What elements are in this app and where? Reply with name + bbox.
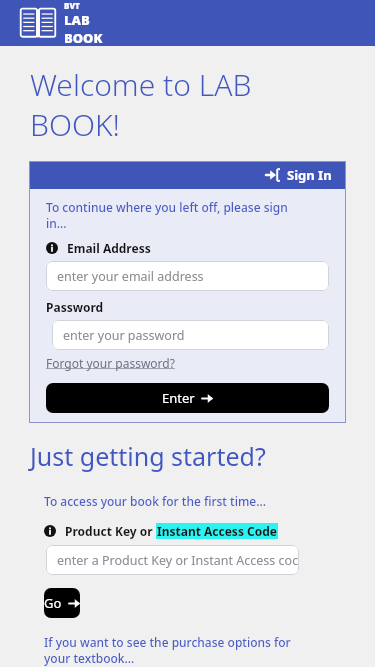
staticText: Go xyxy=(44,594,62,612)
staticText: Sign In xyxy=(287,166,332,184)
button[interactable]: enter your password xyxy=(52,320,329,350)
staticText: To continue where you left off, please s… xyxy=(46,199,288,232)
staticText: Password xyxy=(46,299,104,315)
staticText: Product Key or xyxy=(65,523,156,539)
staticText: enter your email address xyxy=(57,268,204,285)
staticText: BOOK xyxy=(64,29,103,46)
button[interactable]: enter your email address xyxy=(46,261,329,291)
button[interactable]: Forgot your password? xyxy=(46,355,175,371)
staticText: Welcome to LAB BOOK! xyxy=(30,64,252,145)
staticText: To access your book for the first time..… xyxy=(44,493,266,509)
staticText: If you want to see the purchase options … xyxy=(44,634,291,667)
staticText: enter a Product Key or Instant Access co… xyxy=(57,552,299,569)
staticText: BVT xyxy=(64,0,80,11)
button[interactable]: Enter xyxy=(46,383,329,413)
staticText: Email Address xyxy=(67,240,151,256)
staticText: Enter xyxy=(162,389,195,407)
staticText: Instant Access Code xyxy=(157,523,277,539)
button[interactable]: Go xyxy=(44,588,80,618)
staticText: Just getting started? xyxy=(30,439,266,473)
staticText: enter your password xyxy=(63,327,185,344)
staticText: LAB xyxy=(64,11,90,29)
button[interactable]: enter a Product Key or Instant Access co… xyxy=(46,545,299,575)
other: Sign In xyxy=(266,168,280,182)
button[interactable]: Sign In xyxy=(29,161,346,189)
